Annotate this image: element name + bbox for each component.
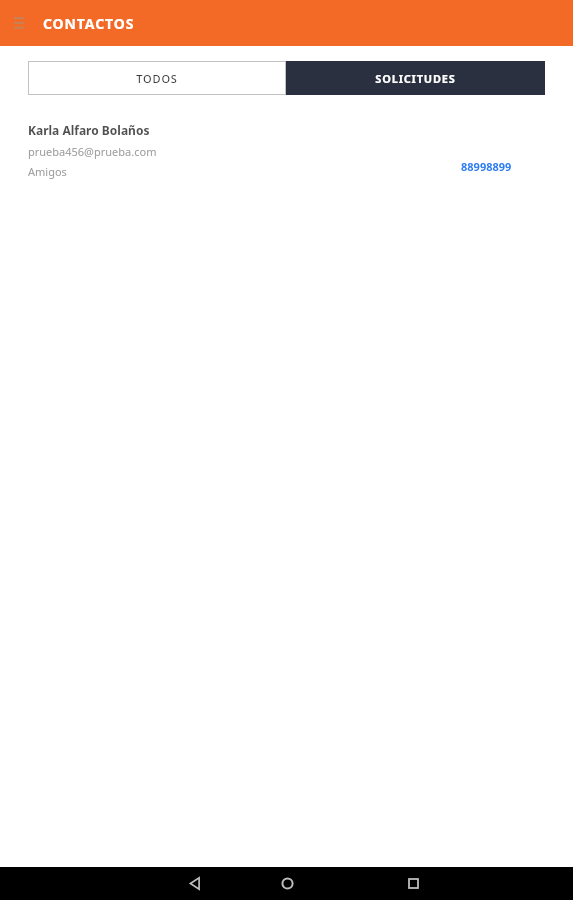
button[interactable]: Open navigation menu: [4, 8, 34, 38]
staticText: Amigos: [28, 164, 67, 179]
staticText: TODOS: [136, 71, 178, 86]
button[interactable]: Back: [160, 867, 230, 900]
button[interactable]: Call 88998899: [461, 159, 512, 174]
button[interactable]: SOLICITUDES: [286, 61, 545, 95]
staticText: SOLICITUDES: [375, 71, 456, 86]
button[interactable]: Recent apps: [378, 867, 448, 900]
button[interactable]: TODOS: [28, 61, 286, 95]
staticText: 88998899: [461, 159, 512, 174]
staticText: prueba456@prueba.com: [28, 144, 157, 159]
staticText: Karla Alfaro Bolaños: [28, 122, 150, 138]
staticText: CONTACTOS: [43, 14, 135, 33]
button[interactable]: Home: [252, 867, 322, 900]
button[interactable]: Karla Alfaro Bolaños: [0, 122, 573, 179]
